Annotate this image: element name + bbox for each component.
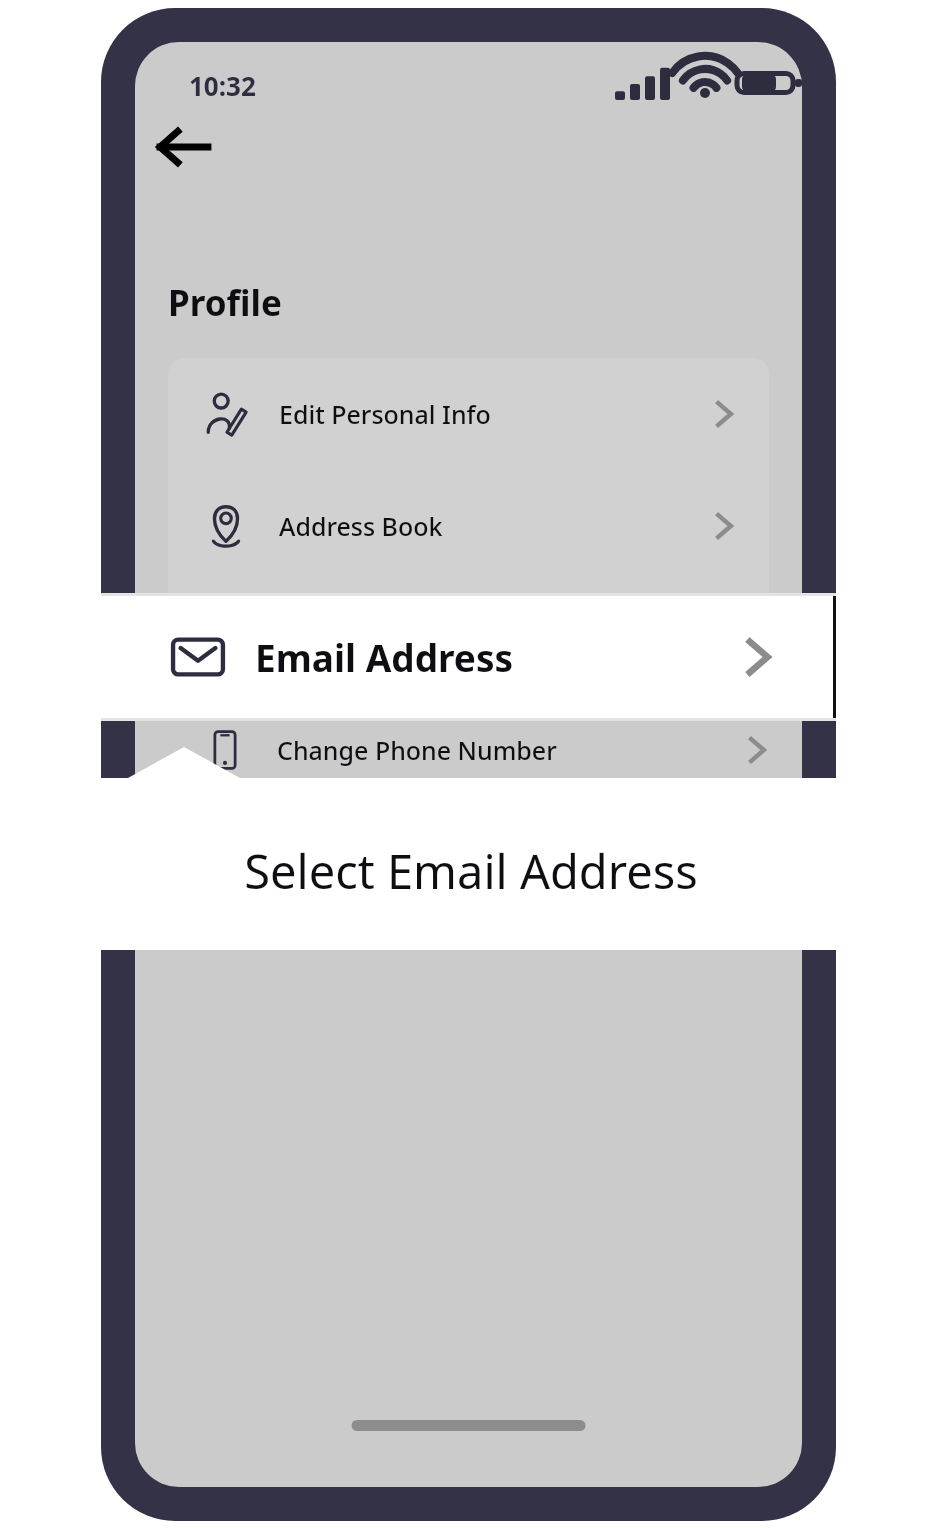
staticText: 10:32 — [189, 68, 256, 103]
button[interactable]: Address Book — [168, 470, 769, 582]
staticText: Edit Personal Info — [279, 397, 491, 431]
staticText: Email Address — [255, 632, 514, 682]
button[interactable]: Email Address — [101, 593, 836, 721]
staticText: Change Phone Number — [277, 733, 557, 767]
staticText: Select Email Address — [244, 839, 698, 903]
button[interactable]: Change Phone Number — [101, 721, 836, 778]
staticText: Address Book — [279, 509, 443, 543]
button[interactable]: Edit Personal Info — [168, 358, 769, 470]
button[interactable]: Back — [145, 108, 223, 186]
staticText: Profile — [168, 279, 282, 327]
